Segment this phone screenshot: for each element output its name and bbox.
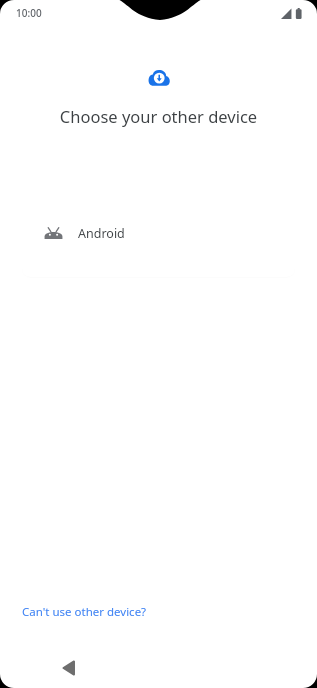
staticText: 10:00 — [16, 6, 42, 20]
staticText: Android — [78, 225, 125, 242]
staticText: Choose your other device — [0, 105, 317, 127]
button[interactable]: Can't use other device? — [22, 600, 147, 624]
button[interactable]: Android — [22, 189, 295, 277]
button[interactable]: Back — [52, 652, 84, 684]
